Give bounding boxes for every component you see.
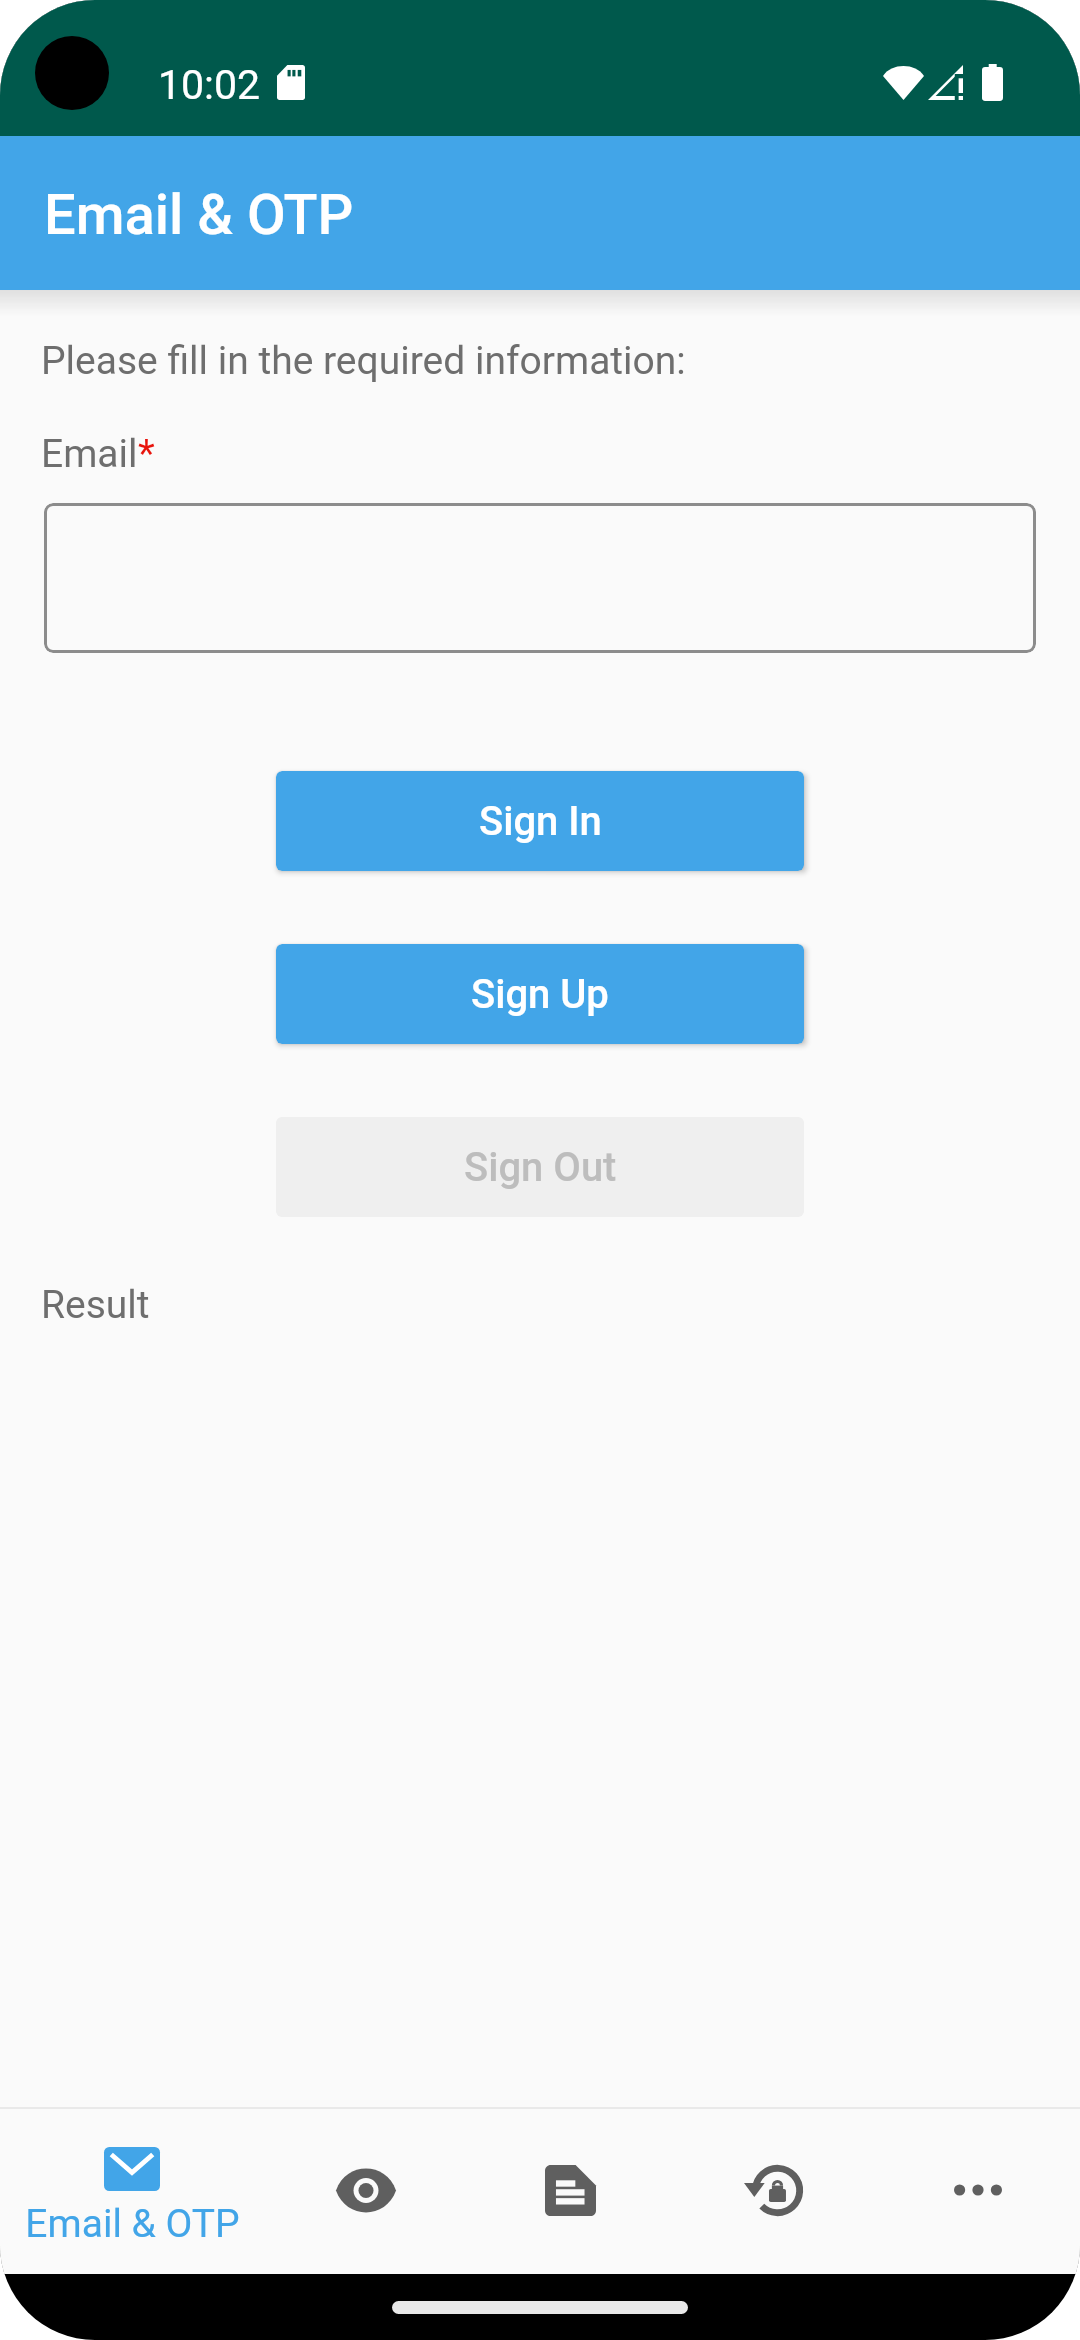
staticText: Email & OTP xyxy=(25,2201,240,2247)
button[interactable]: Visibility xyxy=(264,2109,468,2274)
staticText: Sign Up xyxy=(471,971,609,1018)
staticText: Sign In xyxy=(479,798,602,845)
staticText: Email & OTP xyxy=(44,182,354,248)
staticText: 10:02 xyxy=(158,61,261,109)
staticText: Email xyxy=(41,431,138,477)
button[interactable] xyxy=(44,503,1036,653)
staticText: Please fill in the required information: xyxy=(41,338,686,384)
staticText: Result xyxy=(41,1282,150,1328)
button[interactable]: Documents xyxy=(468,2109,672,2274)
button[interactable]: Sign Out xyxy=(276,1117,804,1217)
staticText: Sign Out xyxy=(464,1144,617,1191)
button[interactable]: More options xyxy=(876,2109,1080,2274)
staticText: * xyxy=(138,431,155,477)
button[interactable]: Sign Up xyxy=(276,944,804,1044)
button[interactable]: Sign In xyxy=(276,771,804,871)
button[interactable]: Reset password xyxy=(672,2109,876,2274)
button[interactable]: Email & OTP xyxy=(0,2109,264,2274)
